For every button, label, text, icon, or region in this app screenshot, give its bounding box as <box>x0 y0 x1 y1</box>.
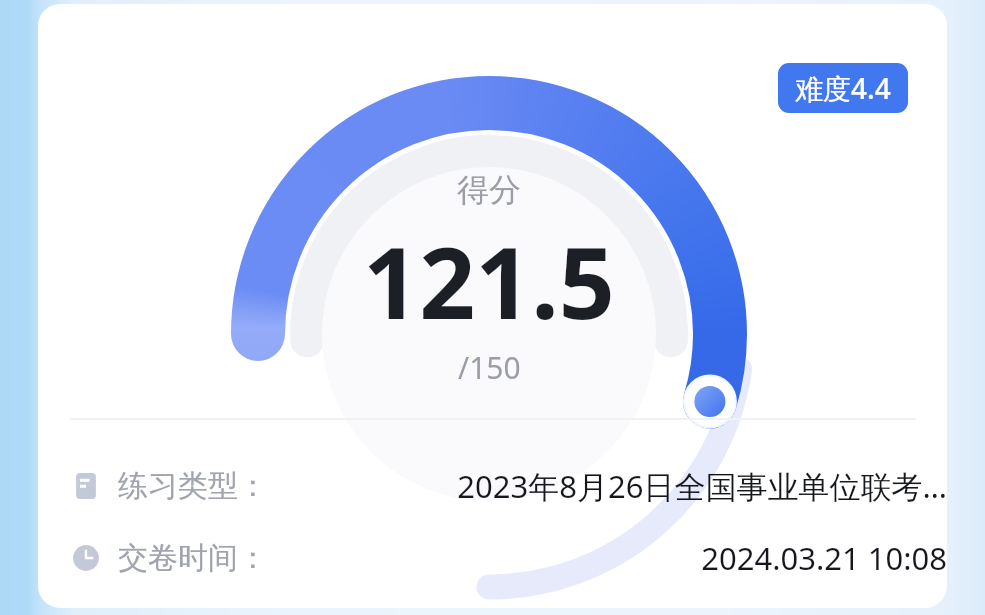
button[interactable]: 交卷时间： <box>71 531 947 585</box>
staticText: 121.5 <box>363 214 615 347</box>
staticText: 2024.03.21 10:08 <box>701 537 947 579</box>
staticText: 得分 <box>457 170 521 210</box>
staticText: 交卷时间： <box>118 539 268 577</box>
staticText: /150 <box>458 347 521 388</box>
staticText: 难度4.4 <box>795 69 891 107</box>
button[interactable]: 难度4.4 <box>778 63 908 113</box>
staticText: 练习类型： <box>118 467 268 505</box>
staticText: 2023年8月26日全国事业单位联考… <box>457 465 947 507</box>
button[interactable]: 练习类型： <box>71 459 947 513</box>
